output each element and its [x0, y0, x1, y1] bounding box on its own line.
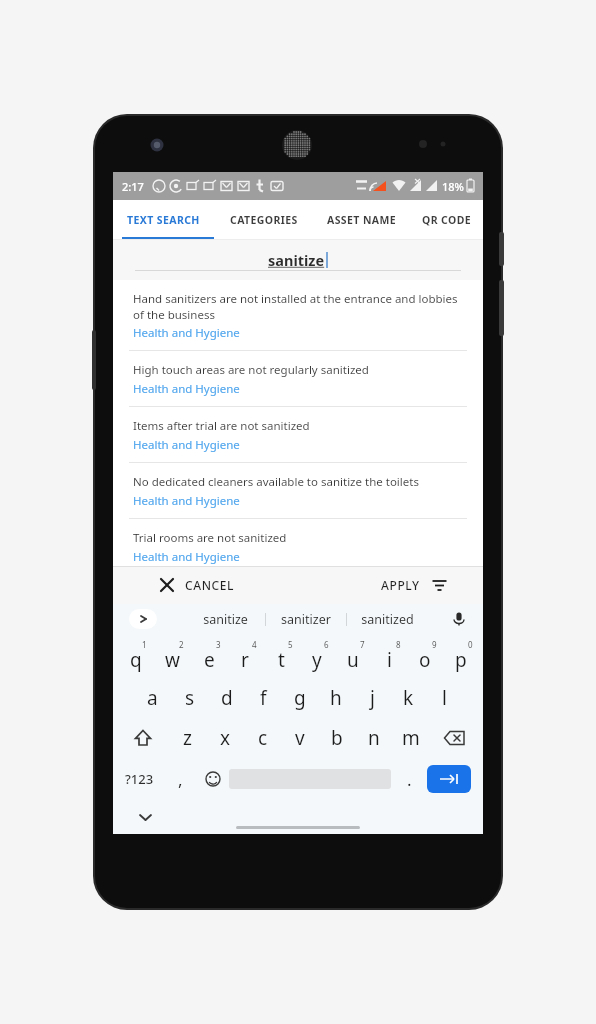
- button[interactable]: ,: [165, 758, 196, 800]
- button[interactable]: Items after trial are not sanitized: [113, 407, 483, 462]
- staticText: a: [147, 685, 158, 711]
- button[interactable]: o: [407, 638, 443, 678]
- button[interactable]: q: [117, 638, 154, 678]
- staticText: 5: [288, 639, 293, 650]
- staticText: Health and Hygiene: [133, 549, 240, 565]
- button[interactable]: sanitize: [185, 606, 265, 632]
- button[interactable]: p: [443, 638, 479, 678]
- button[interactable]: More suggestions: [129, 609, 157, 629]
- staticText: o: [419, 647, 431, 673]
- staticText: k: [403, 685, 414, 711]
- staticText: j: [370, 685, 375, 711]
- staticText: 3: [216, 639, 221, 650]
- button[interactable]: CANCEL: [160, 577, 235, 593]
- button[interactable]: QR CODE: [410, 200, 483, 240]
- staticText: Health and Hygiene: [133, 493, 240, 509]
- staticText: f: [260, 685, 267, 711]
- staticText: Health and Hygiene: [133, 437, 240, 453]
- staticText: n: [368, 725, 380, 751]
- button[interactable]: l: [426, 678, 462, 718]
- staticText: QR CODE: [422, 213, 472, 227]
- staticText: z: [183, 725, 192, 751]
- button[interactable]: k: [390, 678, 426, 718]
- button[interactable]: c: [244, 718, 281, 758]
- button[interactable]: Voice input: [449, 609, 469, 629]
- staticText: c: [258, 725, 268, 751]
- button[interactable]: Shift: [117, 718, 168, 758]
- staticText: Trial rooms are not sanitized: [133, 530, 287, 546]
- button[interactable]: No dedicated cleaners available to sanit…: [113, 463, 483, 518]
- button[interactable]: Enter: [427, 765, 471, 793]
- button[interactable]: y: [299, 638, 335, 678]
- button[interactable]: Emoji: [196, 758, 229, 800]
- button[interactable]: w: [154, 638, 191, 678]
- staticText: Health and Hygiene: [133, 325, 240, 341]
- staticText: 7: [360, 639, 365, 650]
- staticText: d: [221, 685, 233, 711]
- button[interactable]: d: [208, 678, 245, 718]
- staticText: sanitized: [361, 611, 414, 628]
- button[interactable]: h: [318, 678, 354, 718]
- staticText: h: [330, 685, 342, 711]
- staticText: i: [387, 647, 392, 673]
- button[interactable]: v: [281, 718, 318, 758]
- button[interactable]: TEXT SEARCH: [113, 200, 214, 240]
- staticText: Hand sanitizers are not installed at the…: [133, 291, 467, 322]
- staticText: CATEGORIES: [230, 213, 298, 227]
- staticText: x: [220, 725, 231, 751]
- staticText: u: [347, 647, 359, 673]
- button[interactable]: n: [355, 718, 392, 758]
- staticText: ?123: [125, 770, 154, 788]
- staticText: 8: [396, 639, 401, 650]
- button[interactable]: i: [371, 638, 407, 678]
- button[interactable]: sanitized: [347, 606, 427, 632]
- staticText: 2:17: [122, 179, 144, 194]
- staticText: No dedicated cleaners available to sanit…: [133, 474, 419, 490]
- button[interactable]: t: [263, 638, 299, 678]
- button[interactable]: s: [171, 678, 208, 718]
- button[interactable]: ?123: [113, 758, 165, 800]
- button[interactable]: sanitizer: [266, 606, 346, 632]
- staticText: e: [204, 647, 215, 673]
- staticText: w: [165, 647, 180, 673]
- button[interactable]: Hand sanitizers are not installed at the…: [113, 280, 483, 350]
- staticText: Items after trial are not sanitized: [133, 418, 310, 434]
- button[interactable]: a: [134, 678, 171, 718]
- staticText: CANCEL: [185, 577, 235, 593]
- staticText: 18%: [442, 179, 464, 194]
- staticText: l: [442, 685, 447, 711]
- button[interactable]: g: [282, 678, 318, 718]
- button[interactable]: f: [245, 678, 282, 718]
- button[interactable]: x: [206, 718, 244, 758]
- button[interactable]: e: [191, 638, 227, 678]
- button[interactable]: Hide keyboard: [135, 807, 155, 827]
- button[interactable]: z: [168, 718, 206, 758]
- button[interactable]: r: [227, 638, 263, 678]
- button[interactable]: m: [392, 718, 429, 758]
- staticText: 0: [468, 639, 473, 650]
- staticText: ASSET NAME: [327, 213, 397, 227]
- staticText: 4: [252, 639, 257, 650]
- staticText: APPLY: [381, 577, 420, 593]
- staticText: sanitize: [203, 611, 248, 628]
- button[interactable]: CATEGORIES: [214, 200, 314, 240]
- staticText: m: [402, 725, 420, 751]
- staticText: g: [294, 685, 306, 711]
- button[interactable]: b: [318, 718, 355, 758]
- button[interactable]: u: [335, 638, 371, 678]
- staticText: Health and Hygiene: [133, 381, 240, 397]
- staticText: ,: [178, 768, 183, 791]
- button[interactable]: Backspace: [429, 718, 479, 758]
- button[interactable]: j: [354, 678, 390, 718]
- button[interactable]: .: [391, 758, 427, 800]
- button[interactable]: Trial rooms are not sanitized: [113, 519, 483, 574]
- staticText: sanitize: [268, 250, 325, 270]
- other: Filter: [432, 578, 447, 593]
- button[interactable]: APPLY: [381, 577, 447, 593]
- staticText: sanitizer: [281, 611, 331, 628]
- staticText: p: [455, 647, 467, 673]
- button[interactable]: High touch areas are not regularly sanit…: [113, 351, 483, 406]
- staticText: 2: [179, 639, 184, 650]
- button[interactable]: ASSET NAME: [314, 200, 410, 240]
